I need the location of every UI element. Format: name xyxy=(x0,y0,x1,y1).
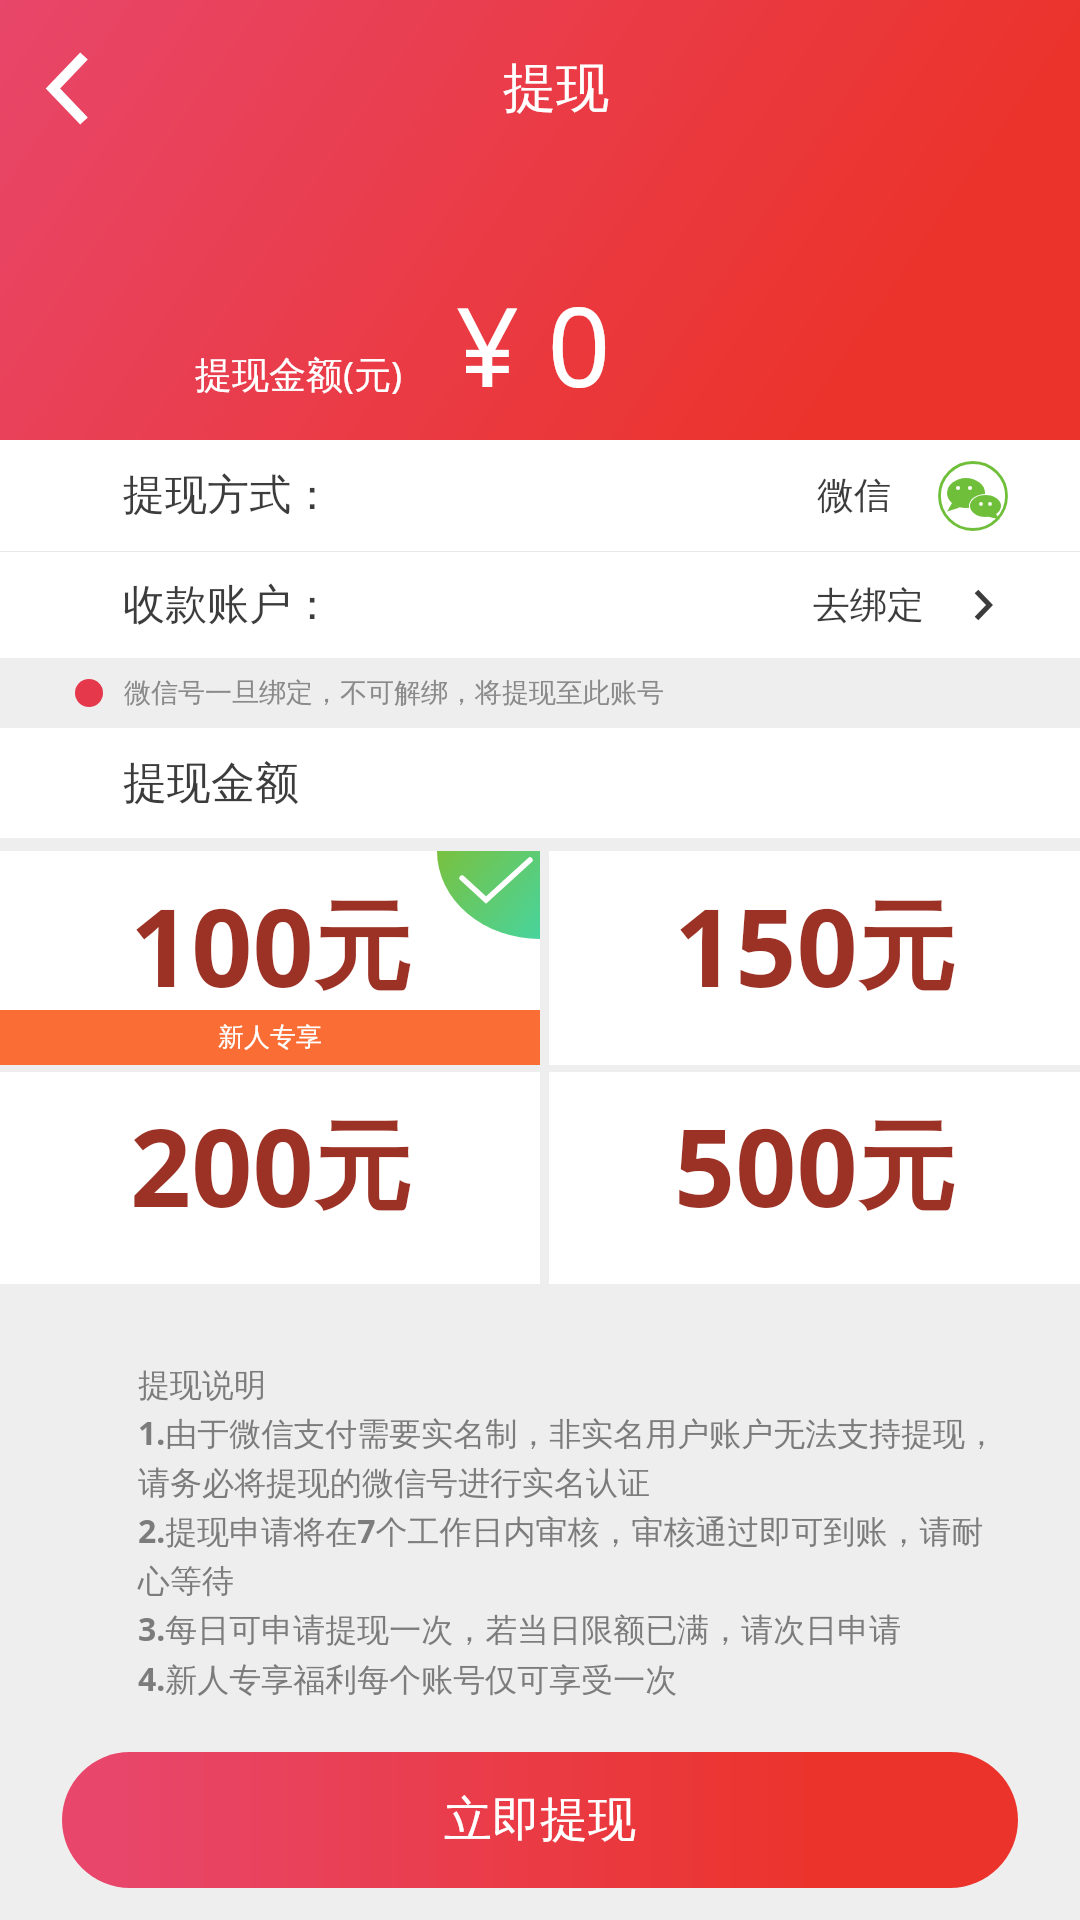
button[interactable]: 150 xyxy=(549,851,1080,1065)
staticText: 提现 xyxy=(503,55,609,122)
staticText: 提现金额 xyxy=(123,756,299,811)
staticText: 去绑定 xyxy=(813,582,924,629)
staticText: 提现说明 1.由于微信支付需要实名制，非实名用户账户无法支持提现，请务必将提现的… xyxy=(138,1365,1000,1701)
staticText: 200 xyxy=(130,1093,314,1239)
button[interactable]: 提现方式： xyxy=(0,440,1080,551)
button[interactable]: 500 xyxy=(549,1072,1080,1284)
staticText: ¥ 0 xyxy=(456,269,611,419)
button[interactable]: 100 xyxy=(0,851,540,1065)
staticText: 150 xyxy=(674,873,858,1019)
staticText: 提现方式： xyxy=(123,469,333,522)
button[interactable]: Back xyxy=(8,30,128,148)
staticText: 微信 xyxy=(817,472,891,519)
staticText: 收款账户： xyxy=(123,579,333,632)
staticText: 提现金额(元) xyxy=(195,348,403,399)
staticText: 新人专享 xyxy=(218,1021,322,1054)
staticText: 立即提现 xyxy=(444,1790,636,1850)
button[interactable]: 立即提现 xyxy=(62,1752,1018,1888)
staticText: 元 xyxy=(858,887,955,1009)
button[interactable]: 200 xyxy=(0,1072,540,1284)
staticText: 500 xyxy=(674,1093,858,1239)
staticText: 元 xyxy=(858,1107,955,1229)
staticText: 微信号一旦绑定，不可解绑，将提现至此账号 xyxy=(124,676,664,710)
staticText: 元 xyxy=(314,1107,411,1229)
button[interactable]: 收款账户： xyxy=(0,552,1080,658)
staticText: 100 xyxy=(130,873,314,1019)
staticText: 元 xyxy=(314,887,411,1009)
